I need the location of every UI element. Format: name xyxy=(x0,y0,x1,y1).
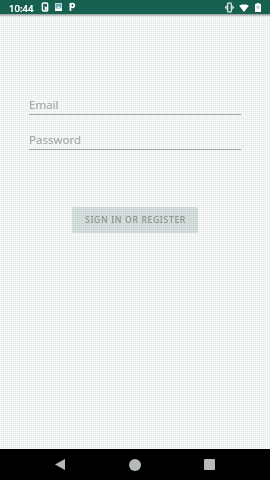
button[interactable]: Recents xyxy=(194,449,225,480)
button[interactable]: SIGN IN OR REGISTER xyxy=(72,207,198,233)
staticText: 10:44 xyxy=(9,2,34,15)
button[interactable]: Back xyxy=(44,449,75,480)
staticText: Email xyxy=(29,97,59,113)
staticText: Password xyxy=(29,132,82,148)
button[interactable]: Home xyxy=(119,449,150,480)
staticText: SIGN IN OR REGISTER xyxy=(85,214,186,226)
button[interactable]: Password xyxy=(29,128,241,150)
button[interactable]: Email xyxy=(29,93,241,115)
